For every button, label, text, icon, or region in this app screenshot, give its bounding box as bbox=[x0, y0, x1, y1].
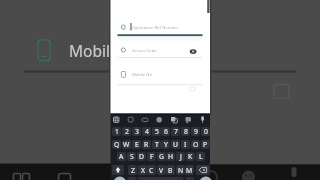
staticText: D bbox=[139, 152, 144, 161]
button[interactable] bbox=[185, 115, 198, 125]
button[interactable]: B bbox=[166, 165, 175, 175]
button[interactable]: Secure Code bbox=[132, 47, 157, 53]
staticText: 8 bbox=[184, 127, 188, 136]
staticText: 5 bbox=[155, 127, 159, 136]
button[interactable] bbox=[113, 115, 126, 125]
button[interactable] bbox=[112, 165, 124, 175]
button[interactable]: V bbox=[157, 165, 166, 175]
staticText: 1 bbox=[115, 127, 119, 136]
button[interactable] bbox=[187, 46, 199, 56]
staticText: C bbox=[149, 166, 154, 175]
button[interactable]: Q bbox=[112, 140, 121, 149]
button[interactable]: X bbox=[138, 165, 147, 175]
staticText: 9 bbox=[194, 127, 198, 136]
staticText: U bbox=[173, 140, 178, 149]
button[interactable]: I bbox=[181, 140, 190, 149]
button[interactable]: Application Ref Number bbox=[132, 24, 179, 30]
button[interactable]: 0 bbox=[201, 127, 210, 136]
button[interactable]: 6 bbox=[161, 127, 170, 136]
button[interactable]: W bbox=[122, 140, 131, 149]
button[interactable]: R bbox=[142, 140, 151, 149]
staticText: 2 bbox=[125, 127, 129, 136]
staticText: P bbox=[203, 140, 208, 149]
button[interactable]: 4 bbox=[142, 127, 151, 136]
staticText: 7 bbox=[174, 127, 178, 136]
button[interactable] bbox=[170, 115, 183, 125]
staticText: Q bbox=[114, 140, 120, 149]
staticText: 6 bbox=[164, 127, 168, 136]
button[interactable]: L bbox=[196, 152, 205, 161]
staticText: L bbox=[199, 152, 203, 161]
button[interactable] bbox=[127, 115, 140, 125]
button[interactable]: 5 bbox=[152, 127, 161, 136]
staticText: O bbox=[193, 140, 199, 149]
button[interactable]: F bbox=[147, 152, 156, 161]
button[interactable]: P bbox=[201, 140, 210, 149]
button[interactable]: E bbox=[132, 140, 141, 149]
staticText: F bbox=[150, 152, 154, 161]
staticText: T bbox=[155, 140, 159, 149]
staticText: B bbox=[168, 166, 173, 175]
button[interactable] bbox=[156, 115, 169, 125]
staticText: J bbox=[180, 152, 182, 161]
button[interactable]: O bbox=[191, 140, 200, 149]
staticText: R bbox=[144, 140, 149, 149]
staticText: V bbox=[159, 166, 164, 175]
button[interactable] bbox=[113, 176, 126, 180]
button[interactable]: C bbox=[147, 165, 156, 175]
staticText: I bbox=[184, 140, 187, 149]
staticText: G bbox=[159, 152, 164, 161]
staticText: S bbox=[130, 152, 134, 161]
staticText: X bbox=[141, 166, 145, 175]
staticText: M bbox=[186, 166, 193, 175]
staticText: W bbox=[123, 140, 130, 149]
staticText: E bbox=[135, 140, 139, 149]
staticText: K bbox=[188, 152, 193, 161]
staticText: 0 bbox=[204, 127, 208, 136]
staticText: Mobile N bbox=[69, 40, 135, 61]
button[interactable]: Y bbox=[161, 140, 170, 149]
button[interactable]: S bbox=[127, 152, 136, 161]
button[interactable] bbox=[199, 176, 212, 180]
button[interactable]: H bbox=[166, 152, 175, 161]
staticText: Y bbox=[164, 140, 168, 149]
staticText: N bbox=[178, 166, 184, 175]
button[interactable]: M bbox=[185, 165, 194, 175]
button[interactable]: T bbox=[152, 140, 161, 149]
staticText: A bbox=[119, 152, 124, 161]
staticText: H bbox=[168, 152, 174, 161]
button[interactable]: 3 bbox=[132, 127, 141, 136]
button[interactable]: 8 bbox=[181, 127, 190, 136]
button[interactable] bbox=[142, 115, 155, 125]
button[interactable]: N bbox=[176, 165, 185, 175]
button[interactable]: J bbox=[176, 152, 185, 161]
staticText: Application Ref Number bbox=[132, 24, 179, 30]
button[interactable]: Z bbox=[128, 165, 137, 175]
button[interactable] bbox=[199, 115, 212, 125]
button[interactable]: Mobile No bbox=[132, 71, 153, 77]
button[interactable]: U bbox=[171, 140, 180, 149]
staticText: Mobile No bbox=[132, 71, 153, 77]
button[interactable]: K bbox=[186, 152, 195, 161]
staticText: Secure Code bbox=[132, 47, 157, 53]
button[interactable]: G bbox=[157, 152, 166, 161]
button[interactable] bbox=[196, 165, 210, 175]
staticText: 4 bbox=[145, 127, 149, 136]
button[interactable]: A bbox=[117, 152, 126, 161]
staticText: 3 bbox=[135, 127, 139, 136]
staticText: Z bbox=[131, 166, 135, 175]
button[interactable]: 9 bbox=[191, 127, 200, 136]
button[interactable]: 2 bbox=[122, 127, 131, 136]
button[interactable]: D bbox=[137, 152, 146, 161]
button[interactable]: 1 bbox=[112, 127, 121, 136]
button[interactable]: 7 bbox=[171, 127, 180, 136]
